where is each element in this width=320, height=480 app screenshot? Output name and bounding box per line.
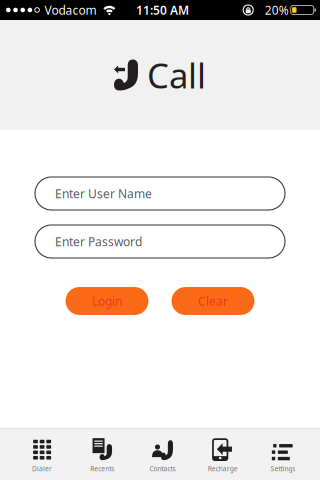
staticText: Dialer <box>32 464 52 473</box>
staticText: 20% <box>265 2 289 18</box>
staticText: Contacts <box>149 464 175 473</box>
staticText: Vodacom <box>44 2 96 18</box>
button[interactable]: Login <box>65 287 148 315</box>
button[interactable]: Recents <box>72 429 132 480</box>
staticText: Clear <box>198 293 228 309</box>
button[interactable]: Settings <box>253 429 313 480</box>
staticText: Login <box>92 293 122 309</box>
staticText: Recharge <box>208 464 238 473</box>
button[interactable]: Contacts <box>132 429 193 480</box>
staticText: Settings <box>270 464 295 473</box>
staticText: Enter Password <box>55 233 142 249</box>
button[interactable]: Dialer <box>12 429 72 480</box>
staticText: Call <box>147 52 206 98</box>
staticText: Recents <box>90 464 114 473</box>
staticText: Enter User Name <box>55 185 152 201</box>
button[interactable]: Recharge <box>193 429 253 480</box>
button[interactable]: Clear <box>171 287 254 315</box>
staticText: 11:50 AM <box>136 2 189 18</box>
